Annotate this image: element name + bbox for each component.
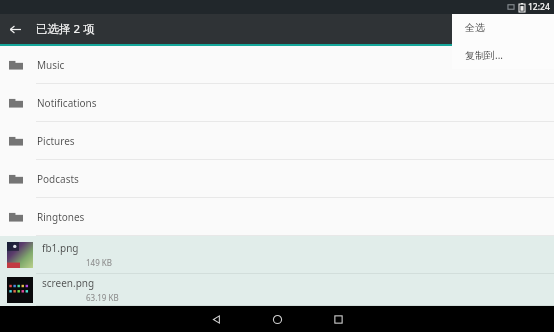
staticText: Pictures bbox=[37, 134, 75, 148]
staticText: screen.png bbox=[42, 276, 95, 290]
button[interactable]: Podcasts bbox=[0, 160, 554, 198]
staticText: Podcasts bbox=[37, 172, 79, 186]
button[interactable]: Back bbox=[0, 14, 30, 44]
button[interactable]: Back bbox=[196, 306, 236, 332]
staticText: Ringtones bbox=[37, 210, 85, 224]
staticText: 63.19 KB bbox=[86, 292, 119, 303]
button[interactable]: Music bbox=[0, 46, 554, 84]
button[interactable]: Pictures bbox=[0, 122, 554, 160]
staticText: 149 KB bbox=[86, 257, 112, 268]
staticText: 复制到... bbox=[465, 48, 504, 62]
button[interactable]: 全选 bbox=[452, 14, 554, 41]
button[interactable]: Ringtones bbox=[0, 198, 554, 236]
button[interactable]: Home bbox=[257, 306, 297, 332]
staticText: fb1.png bbox=[42, 241, 79, 255]
button[interactable]: Notifications bbox=[0, 84, 554, 122]
staticText: 全选 bbox=[465, 21, 485, 34]
staticText: Music bbox=[37, 58, 65, 72]
button[interactable]: 复制到... bbox=[452, 41, 554, 69]
button[interactable]: screen.png bbox=[0, 274, 554, 306]
staticText: 12:24 bbox=[528, 1, 550, 13]
button[interactable]: Recents bbox=[318, 306, 358, 332]
staticText: Notifications bbox=[37, 96, 97, 110]
staticText: 已选择 2 项 bbox=[36, 21, 95, 37]
button[interactable]: fb1.png bbox=[0, 236, 554, 274]
